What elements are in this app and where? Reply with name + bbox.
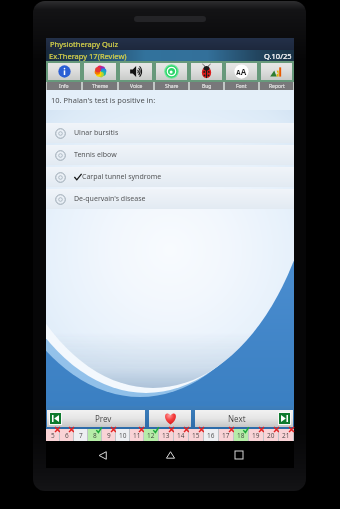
staticText: 21: [282, 431, 290, 440]
staticText: De-quervain's disease: [74, 194, 146, 204]
button[interactable]: 20: [264, 429, 278, 441]
button[interactable]: 10: [116, 429, 129, 441]
staticText: 20: [267, 431, 275, 440]
button[interactable]: Report: [260, 82, 293, 90]
staticText: Carpal tunnel syndrome: [82, 172, 162, 182]
staticText: 11: [133, 431, 141, 440]
button[interactable]: Favourite: [149, 410, 191, 427]
staticText: 13: [162, 431, 170, 440]
staticText: 7: [79, 431, 83, 440]
staticText: Tennis elbow: [74, 150, 117, 160]
staticText: 9: [107, 431, 111, 440]
staticText: Share: [165, 83, 179, 90]
button[interactable]: 6: [60, 429, 73, 441]
button[interactable]: 18: [234, 429, 248, 441]
staticText: Q.10/25: [264, 51, 292, 61]
button[interactable]: 15: [189, 429, 203, 441]
button[interactable]: Carpal tunnel syndrome: [46, 167, 294, 187]
button[interactable]: Share: [155, 82, 188, 90]
button[interactable]: Info: [48, 63, 80, 80]
button[interactable]: 17: [219, 429, 233, 441]
button[interactable]: Font: [226, 63, 257, 80]
button[interactable]: Back: [89, 442, 115, 468]
button[interactable]: 11: [130, 429, 143, 441]
staticText: ᴀA: [236, 66, 247, 77]
button[interactable]: Voice: [119, 82, 153, 90]
staticText: 17: [222, 431, 230, 440]
button[interactable]: Share: [156, 63, 187, 80]
button[interactable]: Home: [157, 442, 183, 468]
staticText: Physiotherapy Quiz: [50, 39, 118, 49]
staticText: Theme: [92, 83, 109, 90]
staticText: 18: [237, 431, 245, 440]
staticText: 15: [192, 431, 200, 440]
button[interactable]: Theme: [84, 63, 116, 80]
button[interactable]: 21: [279, 429, 293, 441]
button[interactable]: Theme: [83, 82, 117, 90]
button[interactable]: Tennis elbow: [46, 145, 294, 165]
staticText: Next: [228, 413, 246, 424]
button[interactable]: Font: [225, 82, 258, 90]
button[interactable]: 8: [88, 429, 101, 441]
button[interactable]: Voice: [120, 63, 152, 80]
button[interactable]: Recent apps: [226, 442, 252, 468]
staticText: 8: [93, 431, 97, 440]
button[interactable]: 16: [204, 429, 218, 441]
staticText: Report: [269, 83, 285, 90]
staticText: 14: [177, 431, 185, 440]
staticText: 19: [252, 431, 260, 440]
button[interactable]: Report: [261, 63, 292, 80]
button[interactable]: 13: [159, 429, 173, 441]
button[interactable]: De-quervain's disease: [46, 189, 294, 209]
button[interactable]: Next: [195, 410, 293, 427]
staticText: Ex.Therapy 17(Review): [49, 51, 127, 61]
button[interactable]: 7: [74, 429, 87, 441]
staticText: Bug: [202, 83, 212, 90]
staticText: 16: [207, 431, 215, 440]
staticText: Voice: [130, 83, 143, 90]
staticText: Info: [59, 83, 69, 90]
button[interactable]: Bug: [191, 63, 222, 80]
staticText: 5: [51, 431, 55, 440]
button[interactable]: Info: [47, 82, 81, 90]
staticText: 10: [119, 431, 127, 440]
staticText: 6: [65, 431, 69, 440]
staticText: 10. Phalan's test is positive in:: [51, 95, 156, 105]
staticText: 12: [147, 431, 155, 440]
staticText: Ulnar bursitis: [74, 128, 119, 138]
button[interactable]: Prev: [47, 410, 145, 427]
button[interactable]: Ulnar bursitis: [46, 123, 294, 143]
button[interactable]: 9: [102, 429, 115, 441]
staticText: Prev: [95, 413, 112, 424]
staticText: Font: [236, 83, 247, 90]
button[interactable]: 19: [249, 429, 263, 441]
button[interactable]: Bug: [190, 82, 223, 90]
button[interactable]: 12: [144, 429, 158, 441]
button[interactable]: 5: [46, 429, 59, 441]
button[interactable]: 14: [174, 429, 188, 441]
